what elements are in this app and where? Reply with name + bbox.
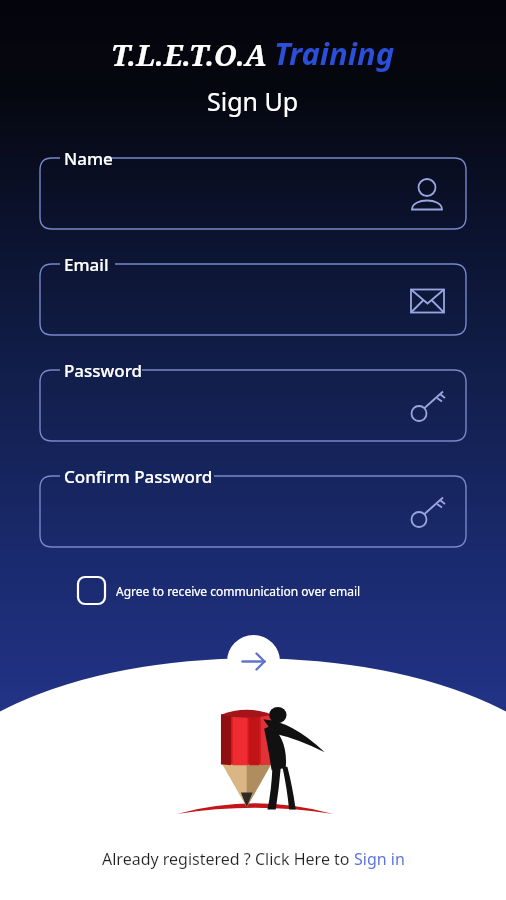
- button[interactable]: Name: [40, 158, 466, 229]
- button[interactable]: Confirm Password: [40, 476, 466, 547]
- button[interactable]: Continue: [227, 635, 280, 688]
- staticText: T.L.E.T.O.A: [111, 35, 267, 74]
- staticText: Name: [64, 147, 113, 170]
- staticText: Password: [64, 359, 143, 382]
- button[interactable]: Sign in: [354, 848, 405, 870]
- button[interactable]: Password: [40, 370, 466, 441]
- staticText: Already registered ? Click Here to: [102, 848, 354, 870]
- staticText: Confirm Password: [64, 465, 213, 488]
- button[interactable]: Email: [40, 264, 466, 335]
- staticText: Training: [274, 32, 395, 74]
- staticText: Email: [64, 253, 109, 276]
- staticText: Sign Up: [207, 84, 299, 118]
- staticText: Agree to receive communication over emai…: [116, 583, 361, 599]
- button[interactable]: Agree to receive communication over emai…: [78, 577, 361, 604]
- staticText: Sign in: [354, 848, 405, 870]
